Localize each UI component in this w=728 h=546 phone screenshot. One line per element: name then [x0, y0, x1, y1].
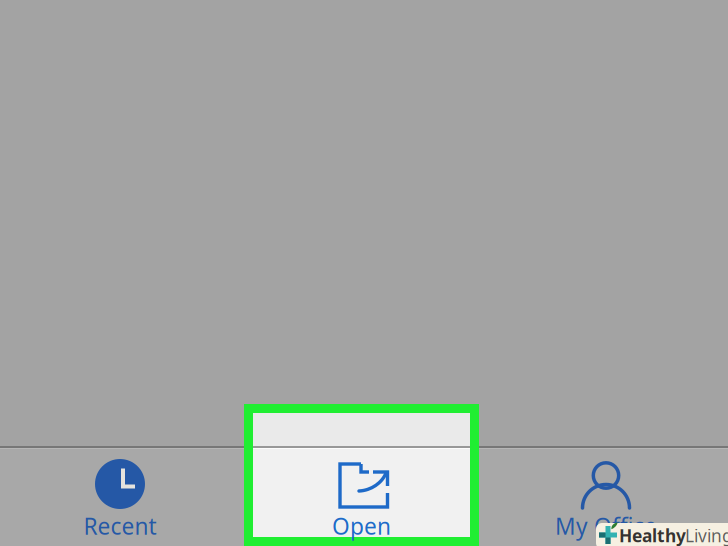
staticText: Healthy: [619, 524, 686, 546]
staticText: Living: [685, 524, 728, 546]
button[interactable]: My Office: [506, 459, 706, 546]
button[interactable]: Open: [253, 459, 470, 546]
staticText: Recent: [83, 511, 156, 541]
staticText: My Office: [555, 511, 657, 541]
button[interactable]: Recent: [20, 459, 220, 546]
staticText: Open: [332, 511, 391, 541]
